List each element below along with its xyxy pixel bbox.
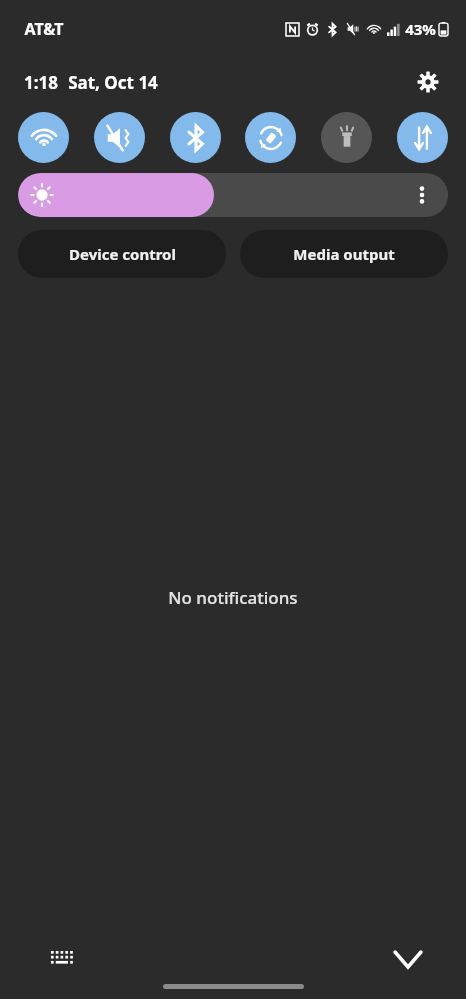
button[interactable]: Sound off bbox=[94, 112, 145, 163]
button[interactable]: Wi-Fi bbox=[18, 112, 69, 163]
staticText: Sat, Oct 14 bbox=[68, 71, 158, 94]
button[interactable]: Bluetooth bbox=[170, 112, 221, 163]
button[interactable]: Auto rotate bbox=[245, 112, 296, 163]
button[interactable]: Collapse bbox=[386, 937, 430, 981]
button[interactable]: Keyboard bbox=[40, 937, 84, 981]
staticText: 1:18 bbox=[24, 71, 58, 94]
staticText: Device control bbox=[69, 244, 176, 264]
button[interactable]: Media output bbox=[240, 230, 448, 278]
staticText: 43% bbox=[405, 19, 436, 39]
button[interactable]: Flashlight bbox=[321, 112, 372, 163]
button[interactable]: Brightness bbox=[18, 173, 448, 217]
button[interactable]: Settings bbox=[406, 60, 450, 104]
staticText: No notifications bbox=[168, 586, 298, 609]
staticText: Media output bbox=[293, 244, 395, 264]
staticText: AT&T bbox=[24, 18, 64, 40]
button[interactable]: Mobile data bbox=[397, 112, 448, 163]
button[interactable]: Device control bbox=[18, 230, 226, 278]
